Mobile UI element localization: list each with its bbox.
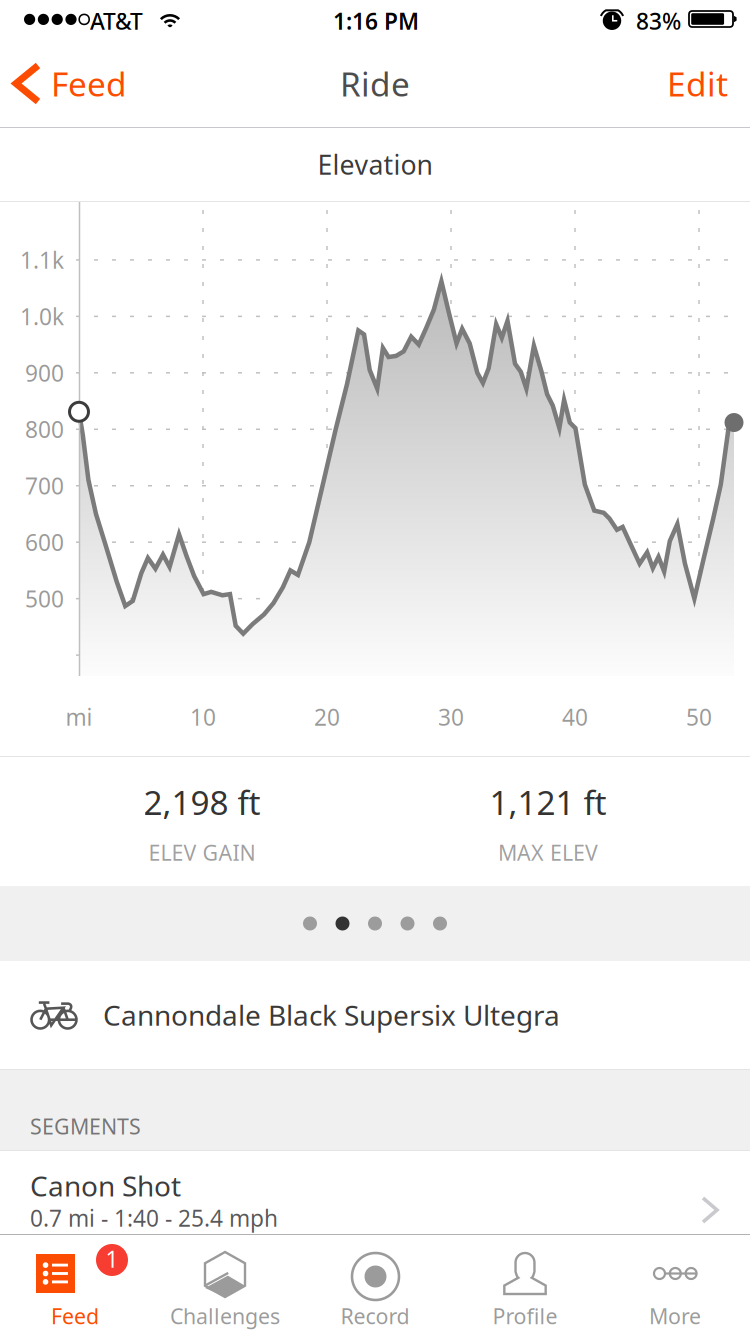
staticText: mi [65,702,92,732]
button[interactable]: Record [300,1234,450,1334]
staticText: 0.7 mi - 1:40 - 25.4 mph [30,1203,278,1233]
staticText: Ride [340,61,410,106]
staticText: 700 [25,471,64,501]
staticText: 1:16 PM [333,6,419,36]
staticText: 1,121 ft [489,780,606,824]
staticText: 500 [25,584,64,614]
staticText: 900 [25,358,64,388]
staticText: Elevation [317,147,432,182]
button[interactable]: Profile [450,1234,600,1334]
staticText: 1 [105,1244,118,1274]
staticText: 2,198 ft [143,780,260,824]
staticText: Challenges [170,1302,280,1330]
staticText: Cannondale Black Supersix Ultegra [103,996,560,1034]
staticText: 1.0k [20,301,64,331]
staticText: 10 [190,702,216,732]
button[interactable]: Cannondale Black Supersix Ultegra [0,961,750,1069]
button[interactable]: Challenges [150,1234,300,1334]
staticText: SEGMENTS [30,1112,141,1140]
button[interactable]: Feed [0,40,141,127]
staticText: More [649,1302,701,1330]
staticText: Canon Shot [30,1167,181,1204]
staticText: 30 [438,702,464,732]
staticText: 20 [314,702,340,732]
staticText: Record [340,1302,409,1330]
staticText: 800 [25,414,64,444]
button[interactable]: More [600,1234,750,1334]
staticText: 83% [636,6,681,36]
staticText: Feed [51,61,127,106]
staticText: 1.1k [20,245,64,275]
button[interactable]: Canon Shot [0,1151,750,1249]
button[interactable]: Edit [653,40,750,127]
staticText: 50 [686,702,712,732]
staticText: 600 [25,527,64,557]
staticText: Edit [667,61,728,106]
staticText: MAX ELEV [498,838,598,867]
staticText: AT&T [90,6,143,36]
staticText: Feed [51,1302,99,1330]
staticText: Profile [492,1302,557,1330]
staticText: 40 [562,702,588,732]
staticText: ELEV GAIN [148,838,255,867]
button[interactable]: 1 [0,1234,150,1334]
